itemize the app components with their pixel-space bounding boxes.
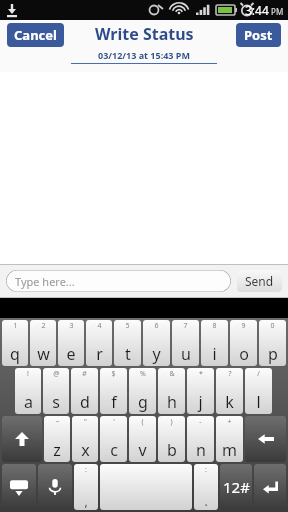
button[interactable]: % xyxy=(129,368,156,414)
button[interactable]: Hide keyboard xyxy=(2,464,36,510)
staticText: r xyxy=(96,343,103,365)
staticText: d xyxy=(80,391,90,413)
button[interactable]: 9 xyxy=(230,320,257,366)
staticText: * xyxy=(199,369,203,379)
button[interactable]: * xyxy=(187,368,214,414)
button[interactable]: 7 xyxy=(172,320,199,366)
button[interactable]: 5 xyxy=(114,320,141,366)
staticText: / xyxy=(257,369,260,379)
staticText: + xyxy=(227,417,232,427)
staticText: k xyxy=(225,391,234,413)
button[interactable]: Cancel xyxy=(7,23,64,47)
button[interactable]: 8 xyxy=(201,320,228,366)
staticText: j xyxy=(198,391,203,413)
button[interactable]: $ xyxy=(100,368,127,414)
staticText: : xyxy=(85,465,87,475)
staticText: , xyxy=(84,493,88,509)
button[interactable]: Voice input xyxy=(38,464,72,510)
staticText: u xyxy=(181,343,191,365)
staticText: 6 xyxy=(154,321,159,331)
button[interactable]: Enter xyxy=(254,464,286,510)
button[interactable]: 2 xyxy=(30,320,56,366)
button[interactable]: key xyxy=(220,464,252,510)
button[interactable]: ( xyxy=(129,416,156,462)
button[interactable]: ~ xyxy=(44,416,70,462)
staticText: n xyxy=(196,439,206,461)
staticText: ' xyxy=(113,417,115,427)
button[interactable]: 6 xyxy=(143,320,170,366)
staticText: PM xyxy=(269,6,284,17)
staticText: b xyxy=(167,439,177,461)
button[interactable]: & xyxy=(158,368,185,414)
staticText: # xyxy=(82,369,87,379)
staticText: 03/12/13 at 15:43 PM xyxy=(98,49,190,61)
button[interactable]: @ xyxy=(43,368,69,414)
staticText: ) xyxy=(170,417,173,427)
button[interactable]: Type here... xyxy=(6,270,231,292)
button[interactable]: 3 xyxy=(58,320,84,366)
staticText: 2 xyxy=(41,321,46,331)
staticText: 12# xyxy=(223,477,250,497)
staticText: @ xyxy=(53,369,60,379)
staticText: Cancel xyxy=(14,26,57,44)
staticText: q xyxy=(10,343,20,365)
staticText: g xyxy=(138,391,148,413)
staticText: % xyxy=(140,369,146,379)
staticText: s xyxy=(52,391,60,413)
staticText: e xyxy=(66,343,76,365)
button[interactable]: ) xyxy=(158,416,185,462)
staticText: y xyxy=(152,343,161,365)
staticText: & xyxy=(169,369,175,379)
staticText: Send xyxy=(245,273,274,289)
staticText: 5 xyxy=(125,321,130,331)
staticText: m xyxy=(222,439,237,461)
button[interactable]: ? xyxy=(216,368,243,414)
button[interactable]: Backspace xyxy=(245,416,286,462)
button[interactable]: / xyxy=(245,368,272,414)
staticText: ~ xyxy=(55,417,60,427)
staticText: i xyxy=(212,343,217,365)
staticText: ? xyxy=(228,369,232,379)
staticText: 3:44 xyxy=(245,2,269,18)
staticText: v xyxy=(138,439,147,461)
staticText: f xyxy=(111,391,117,413)
button[interactable]: Send xyxy=(237,270,282,292)
button[interactable]: - xyxy=(187,416,214,462)
staticText: t xyxy=(125,343,131,365)
staticText: 4 xyxy=(97,321,102,331)
staticText: " xyxy=(84,417,87,427)
staticText: a xyxy=(24,391,33,413)
staticText: Post xyxy=(244,26,273,44)
staticText: Write Status xyxy=(95,23,194,45)
button[interactable]: ' xyxy=(100,416,127,462)
staticText: w xyxy=(37,343,50,365)
staticText: 9 xyxy=(241,321,246,331)
staticText: . xyxy=(204,493,208,509)
button[interactable]: 4 xyxy=(86,320,112,366)
staticText: : xyxy=(205,465,207,475)
button[interactable]: : xyxy=(74,464,98,510)
staticText: $ xyxy=(111,369,116,379)
button[interactable]: Post xyxy=(236,23,281,47)
staticText: ( xyxy=(141,417,144,427)
staticText: ! xyxy=(27,369,29,379)
button[interactable] xyxy=(100,464,192,510)
button[interactable]: + xyxy=(216,416,243,462)
staticText: h xyxy=(167,391,177,413)
button[interactable]: " xyxy=(72,416,98,462)
staticText: c xyxy=(110,439,118,461)
staticText: 1 xyxy=(13,321,18,331)
staticText: 7 xyxy=(183,321,188,331)
staticText: x xyxy=(81,439,90,461)
staticText: p xyxy=(268,343,278,365)
staticText: Type here... xyxy=(15,274,75,289)
button[interactable]: 0 xyxy=(259,320,286,366)
button[interactable]: 1 xyxy=(2,320,28,366)
button[interactable]: Shift xyxy=(2,416,42,462)
staticText: 3 xyxy=(69,321,74,331)
button[interactable]: ! xyxy=(15,368,41,414)
staticText: 8 xyxy=(212,321,217,331)
staticText: - xyxy=(199,417,202,427)
button[interactable]: # xyxy=(71,368,98,414)
button[interactable]: : xyxy=(194,464,218,510)
